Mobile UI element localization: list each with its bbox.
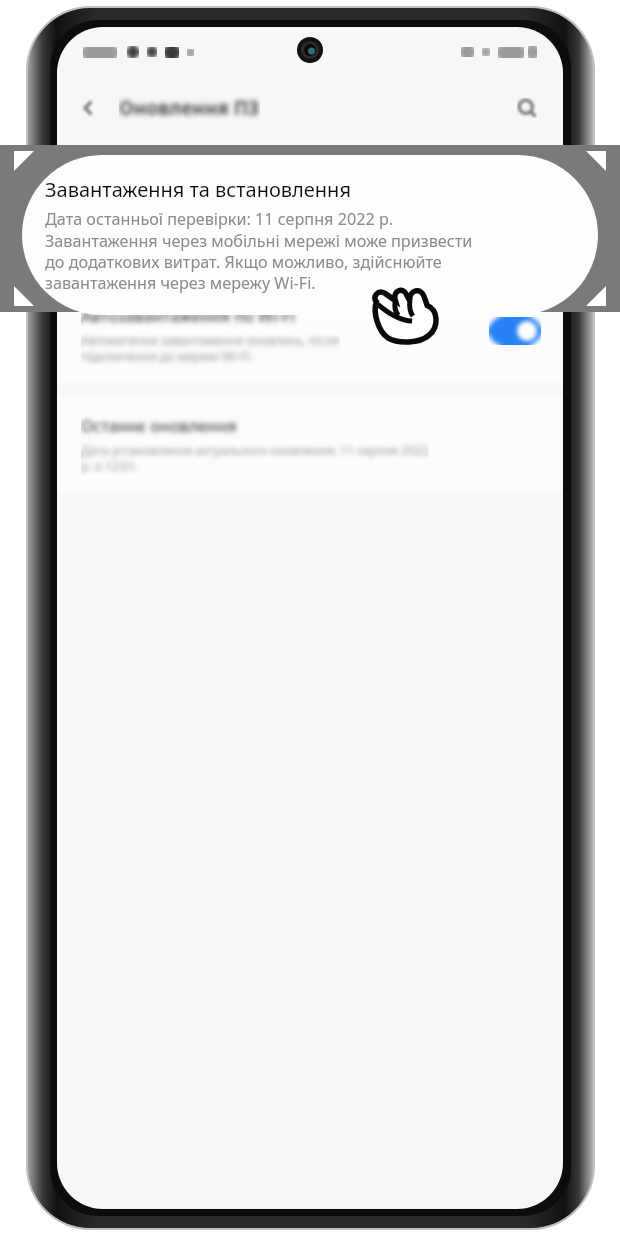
button[interactable]: Auto download over Wi-Fi toggle <box>489 317 541 345</box>
other: Tap here <box>368 282 444 344</box>
other: Back <box>79 98 99 118</box>
button[interactable]: Завантаження та встановлення <box>22 155 598 315</box>
staticText: Завантаження та встановлення <box>45 176 351 203</box>
staticText: Автоматичне завантаження оновлень, після… <box>81 332 340 365</box>
staticText: Останнє оновлення <box>81 415 237 437</box>
staticText: Дата установлення актуального оновлення:… <box>81 442 429 475</box>
button[interactable]: Останнє оновлення <box>57 397 563 493</box>
staticText: Дата останньої перевірки: 11 серпня 2022… <box>45 208 473 294</box>
button[interactable]: Автозавантаження по Wi-Fi <box>57 287 563 383</box>
button[interactable]: Back <box>57 77 563 139</box>
staticText: Оновлення ПЗ <box>119 95 260 121</box>
other: Search <box>517 98 537 118</box>
staticText: Автозавантаження по Wi-Fi <box>81 305 296 327</box>
